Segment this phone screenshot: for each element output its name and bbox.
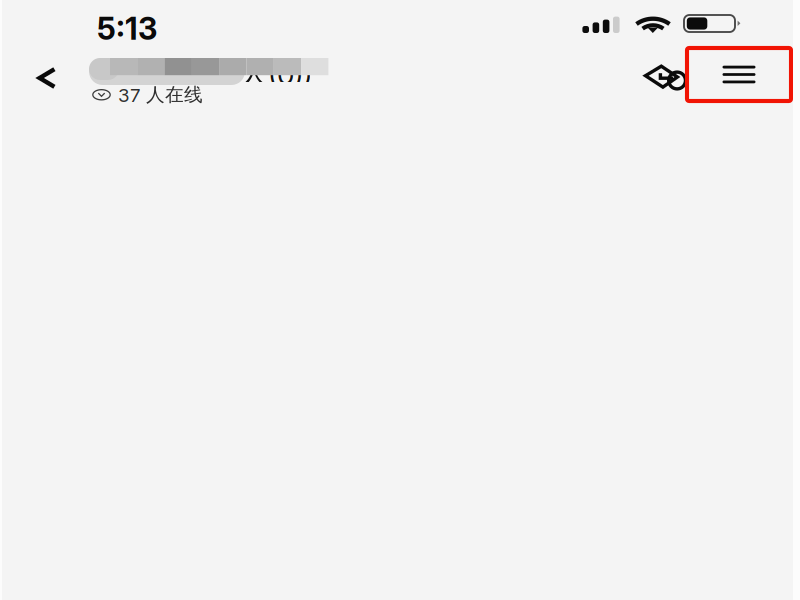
button[interactable]: Menu (687, 48, 791, 101)
staticText: 人(0)) (240, 56, 312, 91)
button[interactable]: Back (20, 50, 74, 106)
button[interactable]: Share (642, 62, 692, 96)
staticText: 5:13 (97, 10, 157, 47)
staticText: 37 人在线 (118, 83, 203, 106)
